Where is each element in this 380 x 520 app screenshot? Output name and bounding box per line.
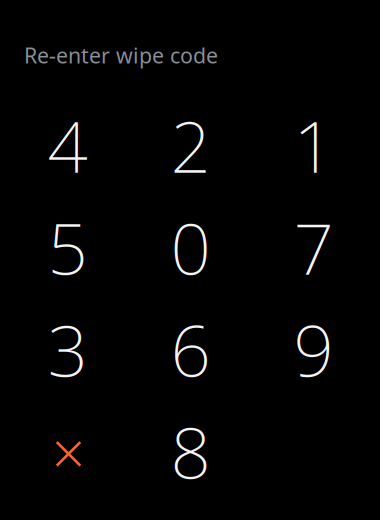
- button[interactable]: 2: [129, 94, 252, 196]
- button[interactable]: 8: [129, 400, 252, 502]
- button[interactable]: 7: [252, 196, 375, 298]
- staticText: 3: [47, 302, 87, 396]
- staticText: 1: [293, 98, 333, 192]
- button[interactable]: 9: [252, 298, 375, 400]
- staticText: 2: [170, 98, 210, 192]
- button[interactable]: 4: [6, 94, 129, 196]
- button[interactable]: 5: [6, 196, 129, 298]
- staticText: 8: [170, 404, 210, 498]
- staticText: Re-enter wipe code: [24, 41, 218, 69]
- button[interactable]: 1: [252, 94, 375, 196]
- button[interactable]: 3: [6, 298, 129, 400]
- button[interactable]: Delete: [6, 400, 129, 502]
- staticText: 9: [293, 302, 333, 396]
- staticText: 5: [47, 200, 87, 294]
- button[interactable]: 6: [129, 298, 252, 400]
- staticText: 7: [293, 200, 333, 294]
- staticText: 0: [170, 200, 210, 294]
- staticText: 6: [170, 302, 210, 396]
- button[interactable]: 0: [129, 196, 252, 298]
- staticText: 4: [47, 98, 87, 192]
